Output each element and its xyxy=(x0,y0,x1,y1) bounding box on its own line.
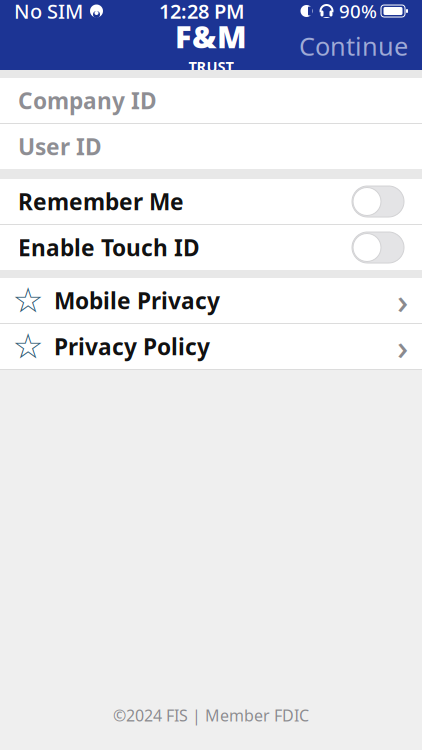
staticText: Privacy Policy xyxy=(54,331,210,361)
staticText: ☆ xyxy=(12,281,43,320)
staticText: Remember Me xyxy=(18,186,184,216)
staticText: Mobile Privacy xyxy=(54,285,220,315)
staticText: ©2024 FIS | Member FDIC xyxy=(113,705,309,726)
staticText: › xyxy=(397,323,408,369)
staticText: 12:28 PM xyxy=(159,0,245,24)
staticText: ☆ xyxy=(12,327,43,366)
staticText: F&M xyxy=(175,16,247,57)
staticText: TRUST xyxy=(188,57,233,76)
staticText: Enable Touch ID xyxy=(18,232,200,262)
button[interactable]: Enable Touch ID xyxy=(0,225,422,270)
staticText: User ID xyxy=(18,131,102,161)
button[interactable]: Remember Me xyxy=(0,179,422,224)
button[interactable]: ☆ xyxy=(0,324,422,369)
staticText: No SIM xyxy=(14,0,83,24)
button[interactable]: Continue xyxy=(285,21,422,71)
button[interactable]: User ID xyxy=(0,124,422,169)
button[interactable]: ☆ xyxy=(0,278,422,323)
staticText: › xyxy=(397,277,408,323)
button[interactable]: Company ID xyxy=(0,78,422,123)
staticText: Continue xyxy=(299,29,408,63)
staticText: Company ID xyxy=(18,85,157,115)
staticText: 90% xyxy=(339,0,377,23)
